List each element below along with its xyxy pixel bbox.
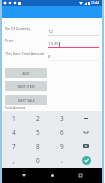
button[interactable]: ADD	[5, 68, 47, 78]
staticText: No Of Quantity	[5, 26, 31, 31]
button[interactable]: Hide keyboard	[16, 168, 31, 183]
button[interactable]: Recents	[73, 168, 88, 183]
staticText: 7	[12, 142, 16, 151]
staticText: 0	[48, 54, 51, 60]
button[interactable]: Minus	[74, 111, 98, 125]
staticText: 3	[60, 114, 64, 123]
button[interactable]: 4	[2, 125, 26, 139]
button[interactable]: Home	[45, 168, 60, 183]
button[interactable]: Space	[74, 125, 98, 139]
button[interactable]: 8	[26, 139, 50, 153]
staticText: 1	[12, 114, 16, 123]
staticText: 2	[36, 114, 40, 123]
staticText: Total Amount	[5, 106, 26, 110]
button[interactable]: 1	[2, 111, 26, 125]
button[interactable]: NEXT ITEM	[5, 81, 47, 91]
staticText: This Item Total Amount	[5, 51, 45, 56]
staticText: NEXT SALE	[18, 98, 35, 103]
button[interactable]: ,	[2, 153, 26, 167]
staticText: NEXT ITEM	[17, 84, 35, 89]
button[interactable]: Backspace	[74, 139, 98, 153]
staticText: 4	[12, 128, 16, 137]
staticText: 0	[36, 156, 40, 165]
staticText: ,	[13, 156, 15, 165]
staticText: 12:44	[91, 1, 100, 5]
staticText: 9	[60, 142, 64, 151]
staticText: ADD	[22, 71, 30, 76]
button[interactable]: 2	[26, 111, 50, 125]
button[interactable]: Enter	[74, 153, 98, 167]
button[interactable]: 3	[50, 111, 74, 125]
button[interactable]: .	[50, 153, 74, 167]
staticText: Price	[5, 38, 14, 43]
button[interactable]: 0	[26, 153, 50, 167]
button[interactable]: 7	[2, 139, 26, 153]
staticText: .	[61, 156, 63, 165]
button[interactable]: 9	[50, 139, 74, 153]
button[interactable]: NEXT SALE	[5, 95, 47, 105]
button[interactable]: 6	[50, 125, 74, 139]
staticText: 5	[36, 128, 40, 137]
staticText: 6	[60, 128, 64, 137]
staticText: 8	[36, 142, 40, 151]
button[interactable]: 5	[26, 125, 50, 139]
staticText: 13.25	[48, 41, 59, 47]
staticText: 12	[48, 29, 53, 35]
